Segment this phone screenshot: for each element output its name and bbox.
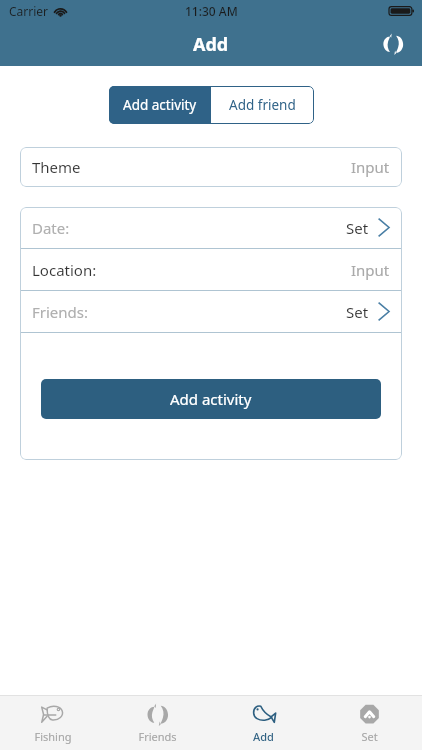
button[interactable]: Set <box>316 696 422 750</box>
staticText: Add activity <box>123 96 197 114</box>
staticText: Add friend <box>229 96 296 114</box>
staticText: Input <box>351 260 390 280</box>
staticText: 11:30 AM <box>185 3 238 19</box>
staticText: Add <box>193 32 229 57</box>
staticText: Theme <box>32 157 81 177</box>
staticText: Add <box>253 729 274 744</box>
staticText: Date: <box>32 218 70 238</box>
button[interactable]: Location: <box>20 249 402 290</box>
staticText: Location: <box>32 260 97 280</box>
staticText: Friends: <box>32 302 89 322</box>
staticText: Set <box>346 302 369 322</box>
button[interactable]: Friends <box>376 27 410 61</box>
button[interactable]: Friends: <box>20 291 402 332</box>
staticText: Set <box>346 218 369 238</box>
button[interactable]: Fishing <box>0 696 105 750</box>
button[interactable]: Add activity <box>109 86 211 124</box>
button[interactable]: Add <box>210 696 316 750</box>
button[interactable]: Friends <box>105 696 210 750</box>
staticText: Set <box>361 729 378 744</box>
staticText: Add activity <box>170 389 252 409</box>
button[interactable]: Theme <box>20 147 402 187</box>
staticText: Friends <box>138 729 177 744</box>
button[interactable]: Add activity <box>41 379 381 419</box>
staticText: Fishing <box>34 729 72 744</box>
button[interactable]: Date: <box>20 207 402 248</box>
button[interactable]: Add friend <box>211 86 314 124</box>
staticText: Carrier <box>9 3 49 19</box>
staticText: Input <box>351 157 390 177</box>
